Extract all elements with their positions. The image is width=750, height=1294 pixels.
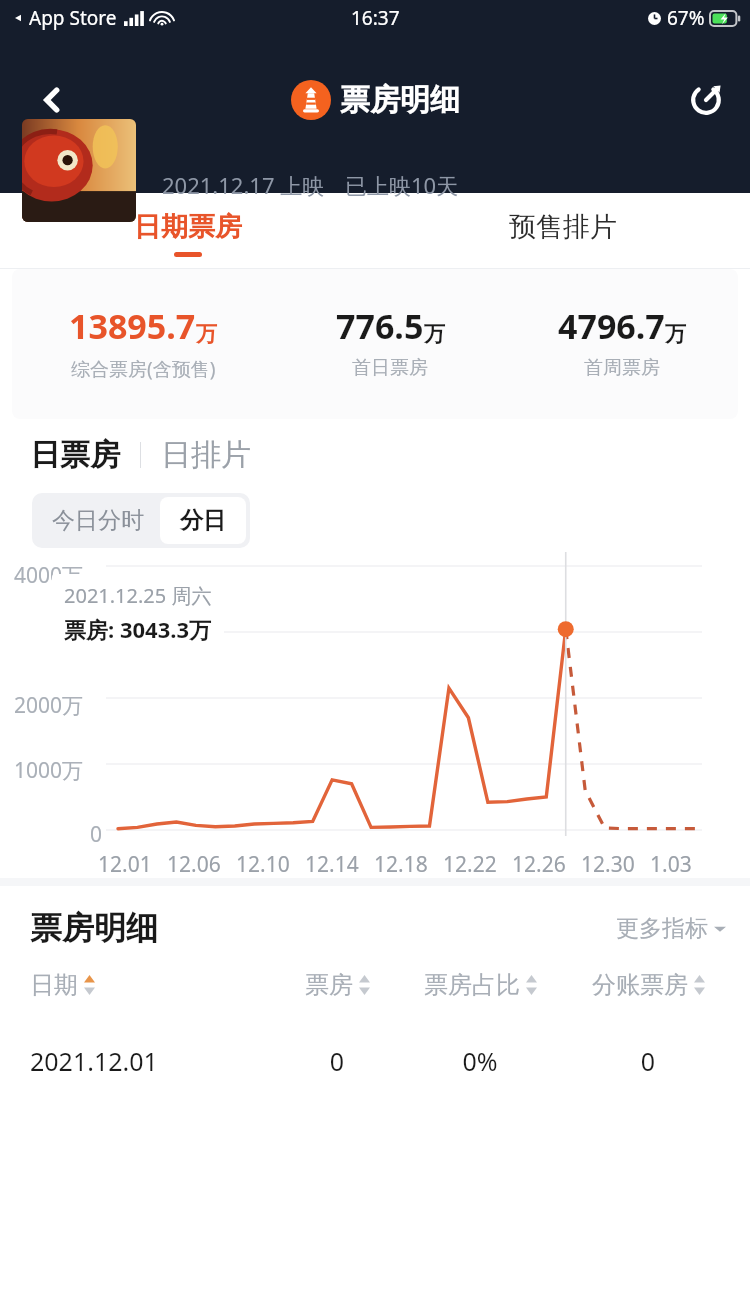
staticText: 0 <box>278 1044 396 1078</box>
staticText: 12.26 <box>512 850 566 879</box>
staticText: 分日 <box>180 506 226 535</box>
staticText: 万 <box>196 321 217 347</box>
staticText: 12.14 <box>305 850 359 879</box>
button[interactable]: 预售排片 <box>375 201 750 269</box>
staticText: 12.30 <box>581 850 635 879</box>
button[interactable]: 日排片 <box>161 436 251 474</box>
button[interactable]: 票房占比 <box>396 970 564 1000</box>
staticText: 票房 <box>305 970 353 1000</box>
staticText: 12.10 <box>236 850 290 879</box>
staticText: 12.06 <box>167 850 221 879</box>
staticText: 已上映10天 <box>345 170 459 200</box>
staticText: 12.22 <box>443 850 497 879</box>
staticText: 4000万 <box>14 561 84 590</box>
staticText: 日期票房 <box>134 210 242 244</box>
staticText: 票房明细 <box>340 81 460 119</box>
button[interactable]: 票房 <box>278 970 396 1000</box>
staticText: 4796.7 <box>558 303 665 349</box>
staticText: 2021.12.25 周六 <box>64 582 212 609</box>
staticText: 更多指标 <box>616 914 708 943</box>
staticText: 万 <box>665 321 686 347</box>
button[interactable]: 分日 <box>160 497 246 544</box>
staticText: 预售排片 <box>509 210 617 244</box>
staticText: 12.18 <box>374 850 428 879</box>
staticText: 万 <box>424 321 445 347</box>
staticText: 13895.7 <box>69 303 196 349</box>
staticText: 今日分时 <box>52 506 144 535</box>
staticText: 首日票房 <box>352 356 428 380</box>
staticText: 首周票房 <box>584 356 660 380</box>
button[interactable]: Refresh <box>678 72 734 128</box>
staticText: 票房: 3043.3万 <box>64 614 212 644</box>
staticText: 67% <box>667 5 705 31</box>
staticText: 票房占比 <box>424 970 520 1000</box>
staticText: 综合票房(含预售) <box>71 356 216 382</box>
staticText: 1.03 <box>650 850 692 879</box>
button[interactable]: 日期票房 <box>0 201 375 269</box>
button[interactable]: 日票房 <box>30 436 120 474</box>
button[interactable]: Back <box>24 72 80 128</box>
button[interactable]: 今日分时 <box>36 497 160 544</box>
staticText: 0 <box>564 1044 732 1078</box>
staticText: 日排片 <box>161 436 251 474</box>
button[interactable]: 日期 <box>30 970 180 1000</box>
staticText: 日票房 <box>30 436 120 474</box>
staticText: 0% <box>396 1044 564 1078</box>
button[interactable]: Movie poster <box>22 119 136 222</box>
staticText: 2021.12.17 上映 <box>162 170 325 200</box>
staticText: 12.01 <box>98 850 152 879</box>
staticText: 票房明细 <box>30 908 158 948</box>
staticText: 2000万 <box>14 691 84 720</box>
staticText: 分账票房 <box>592 970 688 1000</box>
button[interactable]: 分账票房 <box>564 970 732 1000</box>
staticText: 0 <box>90 820 103 849</box>
button[interactable]: 更多指标 <box>616 914 726 943</box>
staticText: 16:37 <box>351 5 400 31</box>
staticText: 2021.12.01 <box>30 1044 180 1078</box>
staticText: 1000万 <box>14 756 84 785</box>
staticText: App Store <box>29 5 117 31</box>
staticText: 日期 <box>30 970 78 1000</box>
staticText: 776.5 <box>336 303 424 349</box>
